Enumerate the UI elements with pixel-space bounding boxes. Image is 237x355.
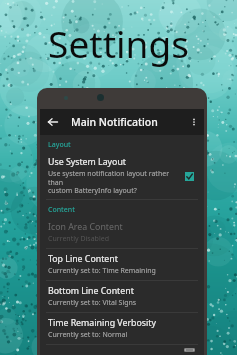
staticText: Currently Disabled xyxy=(48,234,109,244)
staticText: Main Notification xyxy=(71,115,158,129)
button[interactable]: Use System Layout xyxy=(40,152,204,199)
staticText: Currently set to: Time Remaining xyxy=(48,266,156,276)
staticText: Top Line Content xyxy=(48,253,118,265)
staticText: Use System Layout xyxy=(48,156,127,168)
staticText: Icon Area Content xyxy=(48,221,123,233)
button[interactable]: Checked xyxy=(180,167,198,185)
button[interactable]: Status Duration in Vital Signs xyxy=(40,345,204,355)
button[interactable]: Top Line Content xyxy=(40,249,204,280)
button[interactable]: More options xyxy=(184,109,204,135)
button[interactable]: Time Remaining Verbosity xyxy=(40,313,204,344)
staticText: Settings xyxy=(0,18,237,68)
staticText: Content xyxy=(48,205,75,215)
button[interactable]: Bottom Line Content xyxy=(40,281,204,312)
staticText: Currently set to: Normal xyxy=(48,330,128,340)
staticText: Time Remaining Verbosity xyxy=(48,317,156,329)
staticText: Use system notification layout rather th… xyxy=(48,169,180,195)
button[interactable]: Icon Area Content xyxy=(40,217,204,248)
button[interactable]: Unchecked xyxy=(180,349,198,351)
button[interactable]: Navigate up xyxy=(40,109,66,135)
staticText: Layout xyxy=(48,140,71,150)
staticText: Currently set to: Vital Signs xyxy=(48,298,137,308)
staticText: Bottom Line Content xyxy=(48,285,134,297)
